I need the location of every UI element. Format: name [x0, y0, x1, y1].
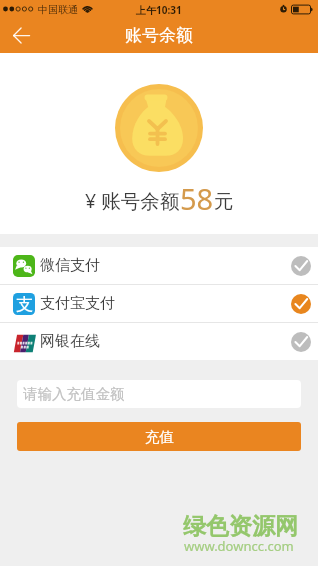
staticText: 微信支付 [40, 256, 100, 275]
staticText: 支付宝支付 [40, 294, 115, 313]
staticText: 网银在线 [40, 332, 100, 351]
button[interactable]: 网银在线 [0, 323, 318, 360]
button[interactable]: Back [0, 18, 42, 53]
staticText: 账号余额 [125, 25, 193, 46]
staticText: 绿色资源网 [183, 512, 298, 541]
button[interactable]: 支 [0, 285, 318, 322]
staticText: 请输入充值金额 [23, 385, 125, 403]
staticText: 元 [214, 189, 234, 214]
staticText: 中国联通 [38, 3, 78, 16]
staticText: 充值 [145, 428, 174, 446]
staticText: 58 [180, 179, 214, 218]
staticText: www.downcc.com [184, 537, 294, 555]
button[interactable]: 充值 [17, 422, 301, 451]
staticText: 上午10:31 [136, 3, 182, 17]
staticText: ¥ 账号余额 [85, 187, 180, 214]
staticText: 支 [16, 294, 33, 315]
button[interactable]: 请输入充值金额 [17, 380, 301, 408]
button[interactable]: 微信支付 [0, 247, 318, 284]
